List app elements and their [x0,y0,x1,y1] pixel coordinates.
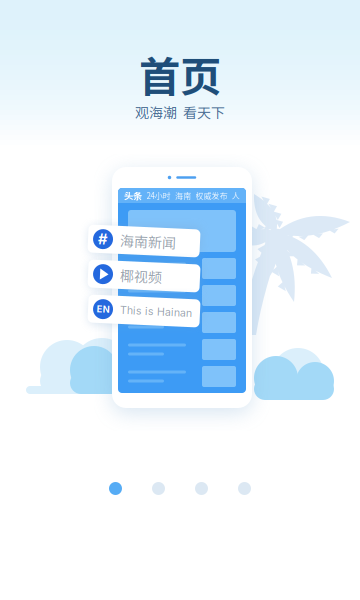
staticText: 海南 [175,190,191,201]
staticText: 头条 [124,189,142,202]
staticText: 24小时 [146,190,170,201]
staticText: This is Hainan [120,304,192,317]
staticText: 权威发布 [195,190,227,201]
staticText: 海南新闻 [120,231,176,251]
staticText: 椰视频 [120,266,162,286]
button[interactable]: 椰视频 [88,262,200,290]
staticText: 首页 [139,44,221,104]
staticText: 人 [232,190,240,201]
staticText: 观海潮 看天下 [135,102,225,122]
button[interactable]: # [88,227,200,255]
staticText: EN [96,305,109,317]
staticText: # [98,232,108,250]
button[interactable]: EN [88,297,200,325]
